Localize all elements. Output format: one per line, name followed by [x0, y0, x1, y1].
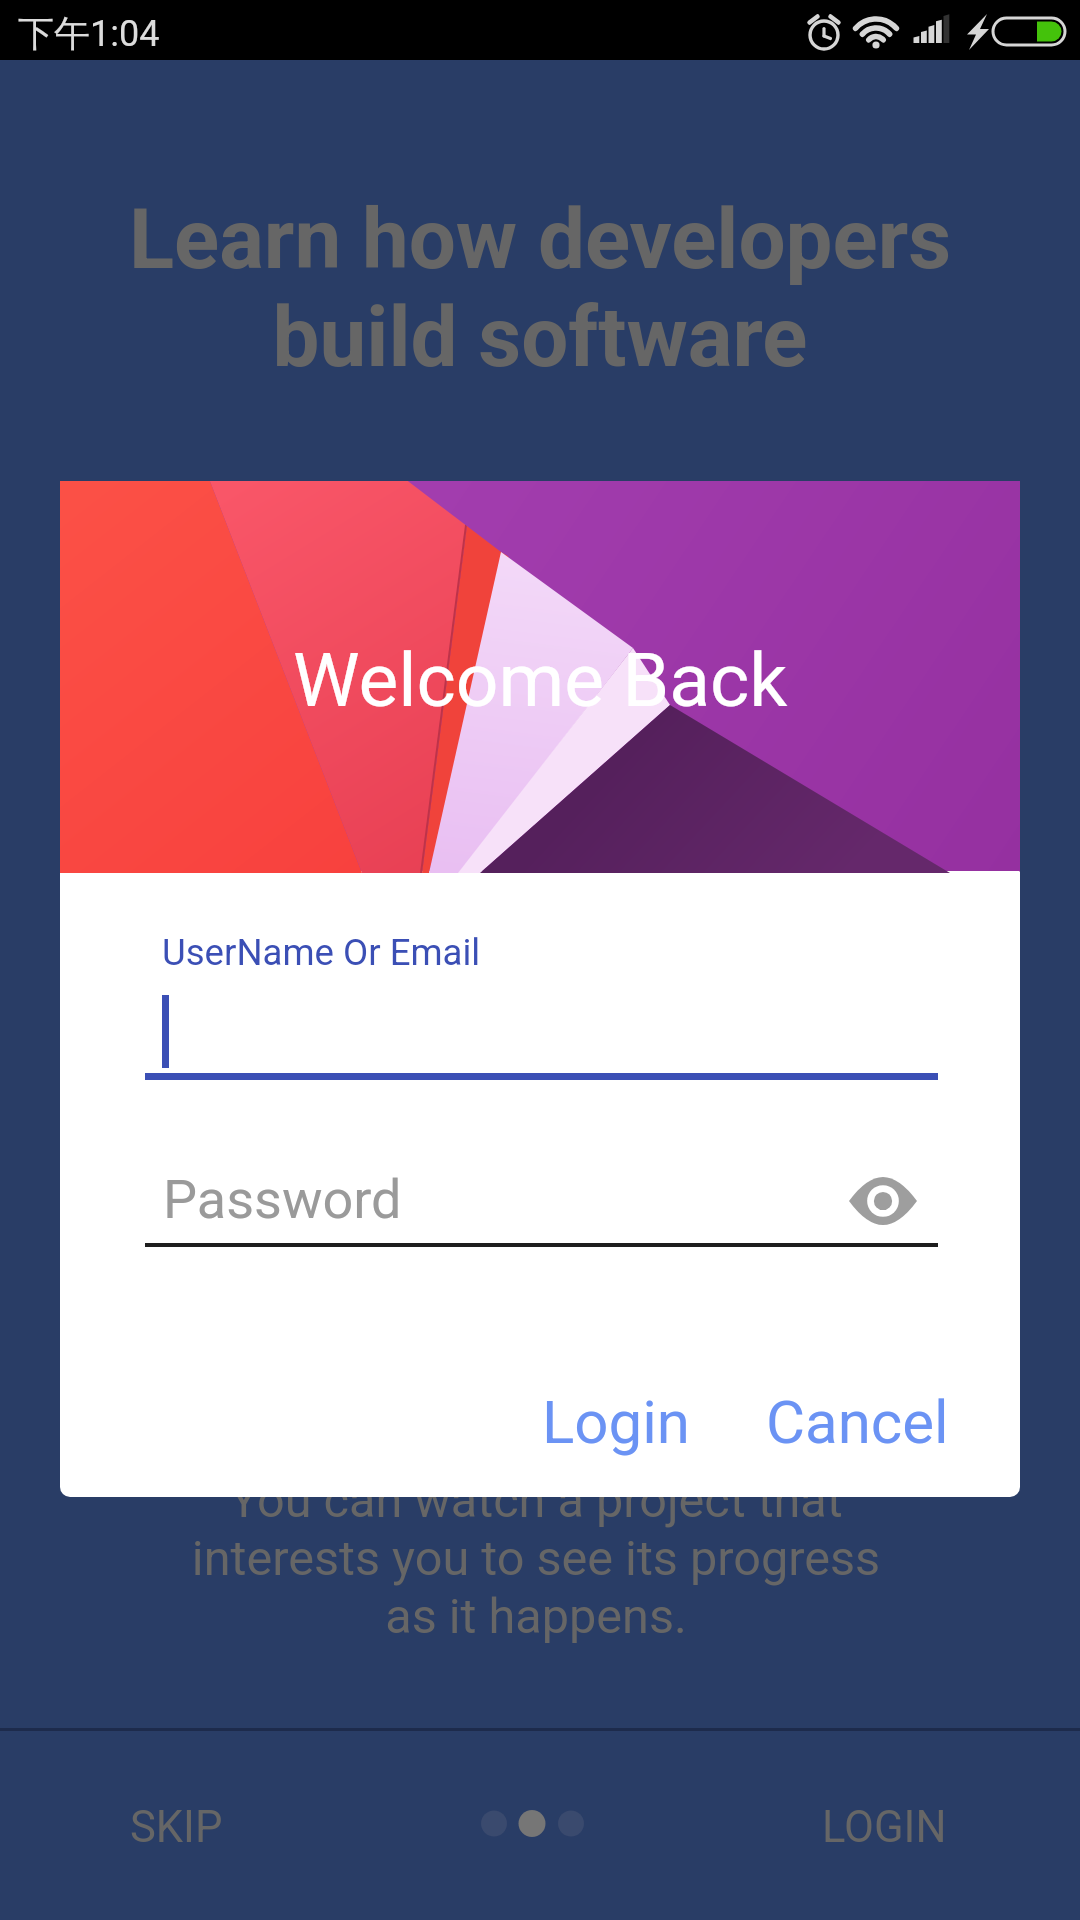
button[interactable]: Show password [831, 1159, 935, 1243]
button[interactable]: LOGIN [752, 1778, 1017, 1889]
other: Page 2 of 3 [468, 1798, 598, 1850]
staticText: Login [542, 1387, 690, 1457]
staticText: Welcome Back [293, 636, 788, 724]
staticText: You can watch a project that interests y… [0, 1472, 1076, 1645]
button[interactable]: SKIP [60, 1778, 293, 1889]
button[interactable]: Login [522, 1369, 710, 1475]
button[interactable]: Cancel [746, 1369, 969, 1475]
staticText: Password [163, 1168, 402, 1231]
button[interactable]: UserName Or Email [145, 921, 938, 1080]
staticText: UserName Or Email [162, 931, 481, 974]
staticText: LOGIN [822, 1802, 947, 1853]
button[interactable]: Password [145, 1157, 938, 1247]
staticText: SKIP [130, 1802, 223, 1853]
staticText: Learn how developers build software [0, 191, 1080, 386]
staticText: Cancel [766, 1387, 949, 1457]
staticText: 下午1:04 [18, 11, 160, 56]
